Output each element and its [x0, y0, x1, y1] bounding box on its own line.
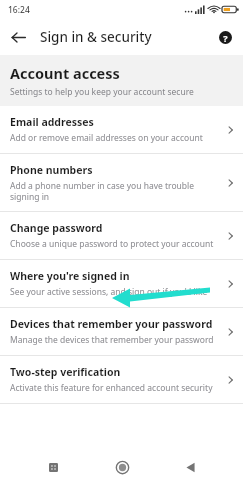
button[interactable]: Phone numbers	[0, 154, 243, 211]
staticText: Add a phone number in case you have trou…	[10, 180, 222, 202]
button[interactable]: Help	[214, 26, 236, 48]
staticText: Two-step verification	[10, 365, 121, 379]
staticText: Change password	[10, 221, 103, 235]
staticText: Manage the devices that remember your pa…	[10, 334, 214, 346]
staticText: Settings to help you keep your account s…	[10, 86, 194, 98]
button[interactable]: Devices that remember your password	[0, 308, 243, 355]
button[interactable]: Two-step verification	[0, 356, 243, 403]
button[interactable]: Recents	[38, 452, 68, 482]
staticText: Account access	[10, 63, 120, 83]
staticText: See your active sessions, and sign out i…	[10, 286, 208, 298]
button[interactable]: Home	[107, 452, 137, 482]
button[interactable]: Email addresses	[0, 106, 243, 153]
staticText: Phone numbers	[10, 163, 93, 177]
staticText: Activate this feature for enhanced accou…	[10, 382, 213, 394]
staticText: Email addresses	[10, 115, 94, 129]
button[interactable]: Change password	[0, 212, 243, 259]
button[interactable]: Back	[7, 26, 29, 48]
staticText: Add or remove email addresses on your ac…	[10, 132, 203, 144]
staticText: Where you're signed in	[10, 269, 130, 283]
staticText: Choose a unique password to protect your…	[10, 238, 214, 250]
staticText: Devices that remember your password	[10, 317, 213, 331]
button[interactable]: Where you're signed in	[0, 260, 243, 307]
staticText: 16:24	[8, 4, 30, 16]
staticText: ?	[223, 32, 228, 44]
staticText: Sign in & security	[40, 28, 152, 46]
button[interactable]: Back	[175, 452, 205, 482]
